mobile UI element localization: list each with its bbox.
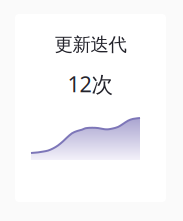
staticText: 12次 [67,69,113,99]
staticText: 更新迭代 [54,33,126,56]
